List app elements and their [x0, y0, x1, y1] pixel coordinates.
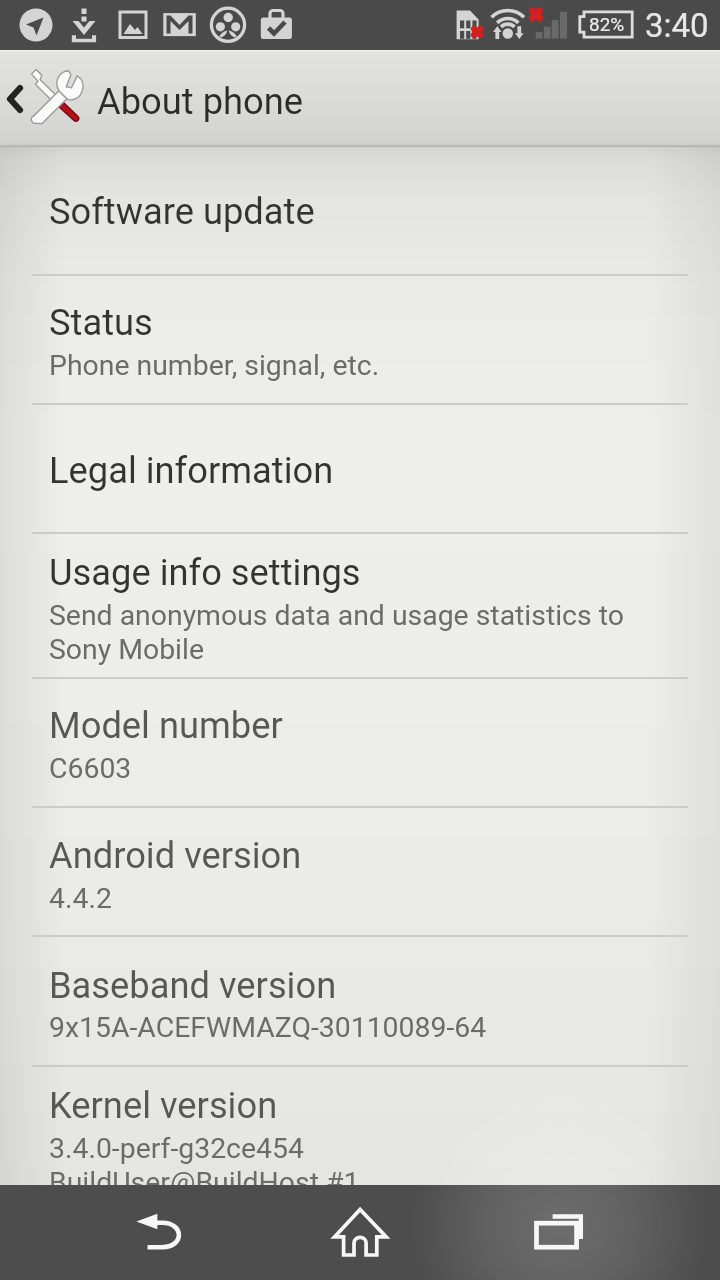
button[interactable]: Back: [0, 1185, 240, 1280]
staticText: Sony Mobile: [49, 633, 204, 666]
staticText: Send anonymous data and usage statistics…: [49, 599, 624, 632]
staticText: 4.4.2: [49, 882, 112, 915]
staticText: 3:40: [645, 6, 709, 45]
staticText: About phone: [97, 80, 304, 123]
button[interactable]: Legal information: [0, 405, 720, 534]
button[interactable]: Model number: [0, 679, 720, 808]
button[interactable]: Android version: [0, 808, 720, 937]
staticText: Status: [49, 301, 153, 344]
button[interactable]: Baseband version: [0, 937, 720, 1067]
button[interactable]: Recent apps: [480, 1185, 720, 1280]
button[interactable]: Navigate up: [0, 50, 720, 147]
button[interactable]: Usage info settings: [0, 534, 720, 679]
other: Navigate up: [0, 50, 30, 147]
button[interactable]: Software update: [0, 147, 720, 276]
button[interactable]: Status: [0, 276, 720, 405]
staticText: C6603: [49, 752, 132, 785]
staticText: 9x15A-ACEFWMAZQ-30110089-64: [49, 1011, 487, 1044]
staticText: BuildUser@BuildHost #1: [49, 1166, 360, 1199]
staticText: Software update: [49, 190, 315, 233]
staticText: Legal information: [49, 449, 334, 492]
staticText: Model number: [49, 704, 283, 747]
staticText: Usage info settings: [49, 551, 361, 594]
staticText: Baseband version: [49, 964, 337, 1007]
button[interactable]: Home: [240, 1185, 480, 1280]
staticText: 3.4.0-perf-g32ce454: [49, 1132, 304, 1165]
staticText: Phone number, signal, etc.: [49, 349, 380, 382]
staticText: Kernel version: [49, 1084, 278, 1127]
staticText: 82%: [589, 13, 625, 35]
button[interactable]: Kernel version: [0, 1067, 720, 1185]
staticText: Android version: [49, 834, 302, 877]
